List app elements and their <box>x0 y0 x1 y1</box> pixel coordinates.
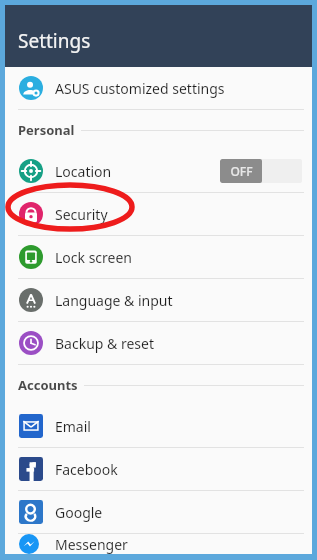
button[interactable]: Messenger <box>5 534 312 554</box>
staticText: Security <box>55 205 108 224</box>
button[interactable]: Google <box>5 491 312 533</box>
button[interactable]: Security <box>5 193 312 235</box>
staticText: Facebook <box>55 460 118 479</box>
staticText: ASUS customized settings <box>55 79 225 98</box>
button[interactable]: Email <box>5 405 312 447</box>
staticText: Email <box>55 417 91 436</box>
staticText: Location <box>55 162 112 181</box>
staticText: Messenger <box>55 535 128 554</box>
staticText: Language & input <box>55 291 173 310</box>
button[interactable]: Location <box>5 150 312 192</box>
staticText: Backup & reset <box>55 334 154 353</box>
button[interactable]: Language & input <box>5 279 312 321</box>
staticText: Google <box>55 503 103 522</box>
button[interactable]: Settings <box>5 5 312 67</box>
button[interactable]: Location off <box>220 159 302 183</box>
button[interactable]: Backup & reset <box>5 322 312 364</box>
staticText: Lock screen <box>55 248 133 267</box>
button[interactable]: Facebook <box>5 448 312 490</box>
staticText: Personal <box>18 121 75 139</box>
button[interactable]: Lock screen <box>5 236 312 278</box>
staticText: OFF <box>230 163 253 179</box>
staticText: Settings <box>18 28 91 54</box>
staticText: Accounts <box>18 376 78 394</box>
button[interactable]: ASUS customized settings <box>5 67 312 109</box>
